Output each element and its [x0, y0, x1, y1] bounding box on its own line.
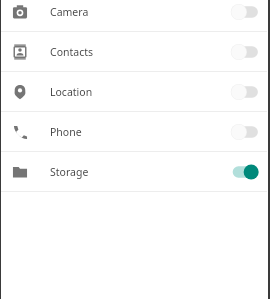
other: Contacts	[12, 44, 28, 60]
other: Camera	[12, 4, 28, 20]
other: Storage	[12, 164, 28, 180]
button[interactable]: Storage	[0, 152, 270, 191]
other: Phone	[12, 124, 28, 140]
staticText: Phone	[50, 125, 82, 139]
button[interactable]: Phone	[0, 112, 270, 151]
other: Location	[12, 84, 28, 100]
staticText: Location	[50, 85, 93, 99]
staticText: Storage	[50, 165, 89, 179]
button[interactable]: On	[230, 162, 260, 182]
button[interactable]: Off	[230, 122, 260, 142]
button[interactable]: Off	[230, 2, 260, 22]
staticText: Contacts	[50, 45, 94, 59]
button[interactable]: Off	[230, 82, 260, 102]
button[interactable]: Contacts	[0, 32, 270, 71]
staticText: Camera	[50, 5, 89, 19]
button[interactable]: Location	[0, 72, 270, 111]
button[interactable]: Off	[230, 42, 260, 62]
button[interactable]: Camera	[0, 0, 270, 31]
